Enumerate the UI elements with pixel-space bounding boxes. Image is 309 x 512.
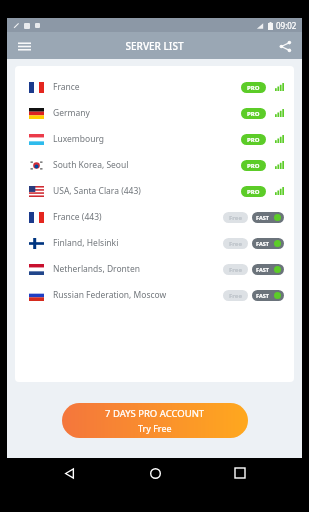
button[interactable]: Netherlands, Dronten xyxy=(15,256,294,282)
staticText: FAST xyxy=(256,214,269,221)
staticText: Luxembourg xyxy=(53,133,105,145)
staticText: FAST xyxy=(256,240,269,247)
button[interactable]: Back xyxy=(53,458,85,488)
button[interactable]: South Korea, Seoul xyxy=(15,152,294,178)
staticText: Free xyxy=(229,214,243,222)
button[interactable]: Finland, Helsinki xyxy=(15,230,294,256)
button[interactable]: Menu xyxy=(11,33,37,59)
staticText: Free xyxy=(229,240,243,248)
staticText: Free xyxy=(229,292,243,300)
staticText: 7 DAYS PRO ACCOUNT xyxy=(105,407,205,420)
staticText: FAST xyxy=(256,292,269,299)
staticText: Finland, Helsinki xyxy=(53,237,119,249)
staticText: USA, Santa Clara (443) xyxy=(53,185,141,197)
button[interactable]: Recents xyxy=(224,458,256,488)
button[interactable]: Russian Federation, Moscow xyxy=(15,282,294,308)
staticText: Free xyxy=(229,266,243,274)
button[interactable]: France xyxy=(15,74,294,100)
staticText: Germany xyxy=(53,107,90,119)
staticText: PRO xyxy=(247,136,260,144)
staticText: Netherlands, Dronten xyxy=(53,263,140,275)
staticText: France xyxy=(53,81,80,93)
staticText: Russian Federation, Moscow xyxy=(53,289,167,301)
button[interactable]: France (443) xyxy=(15,204,294,230)
button[interactable]: Home xyxy=(139,458,171,488)
staticText: PRO xyxy=(247,110,260,118)
staticText: France (443) xyxy=(53,211,102,223)
button[interactable]: USA, Santa Clara (443) xyxy=(15,178,294,204)
staticText: SERVER LIST xyxy=(125,39,184,53)
staticText: PRO xyxy=(247,84,260,92)
button[interactable]: 7 DAYS PRO ACCOUNT xyxy=(62,403,248,438)
button[interactable]: Germany xyxy=(15,100,294,126)
staticText: PRO xyxy=(247,162,260,170)
staticText: South Korea, Seoul xyxy=(53,159,129,171)
button[interactable]: Share xyxy=(272,33,298,59)
button[interactable]: Luxembourg xyxy=(15,126,294,152)
staticText: Try Free xyxy=(138,422,172,434)
staticText: 09:02 xyxy=(276,20,297,31)
staticText: FAST xyxy=(256,266,269,273)
staticText: PRO xyxy=(247,188,260,196)
